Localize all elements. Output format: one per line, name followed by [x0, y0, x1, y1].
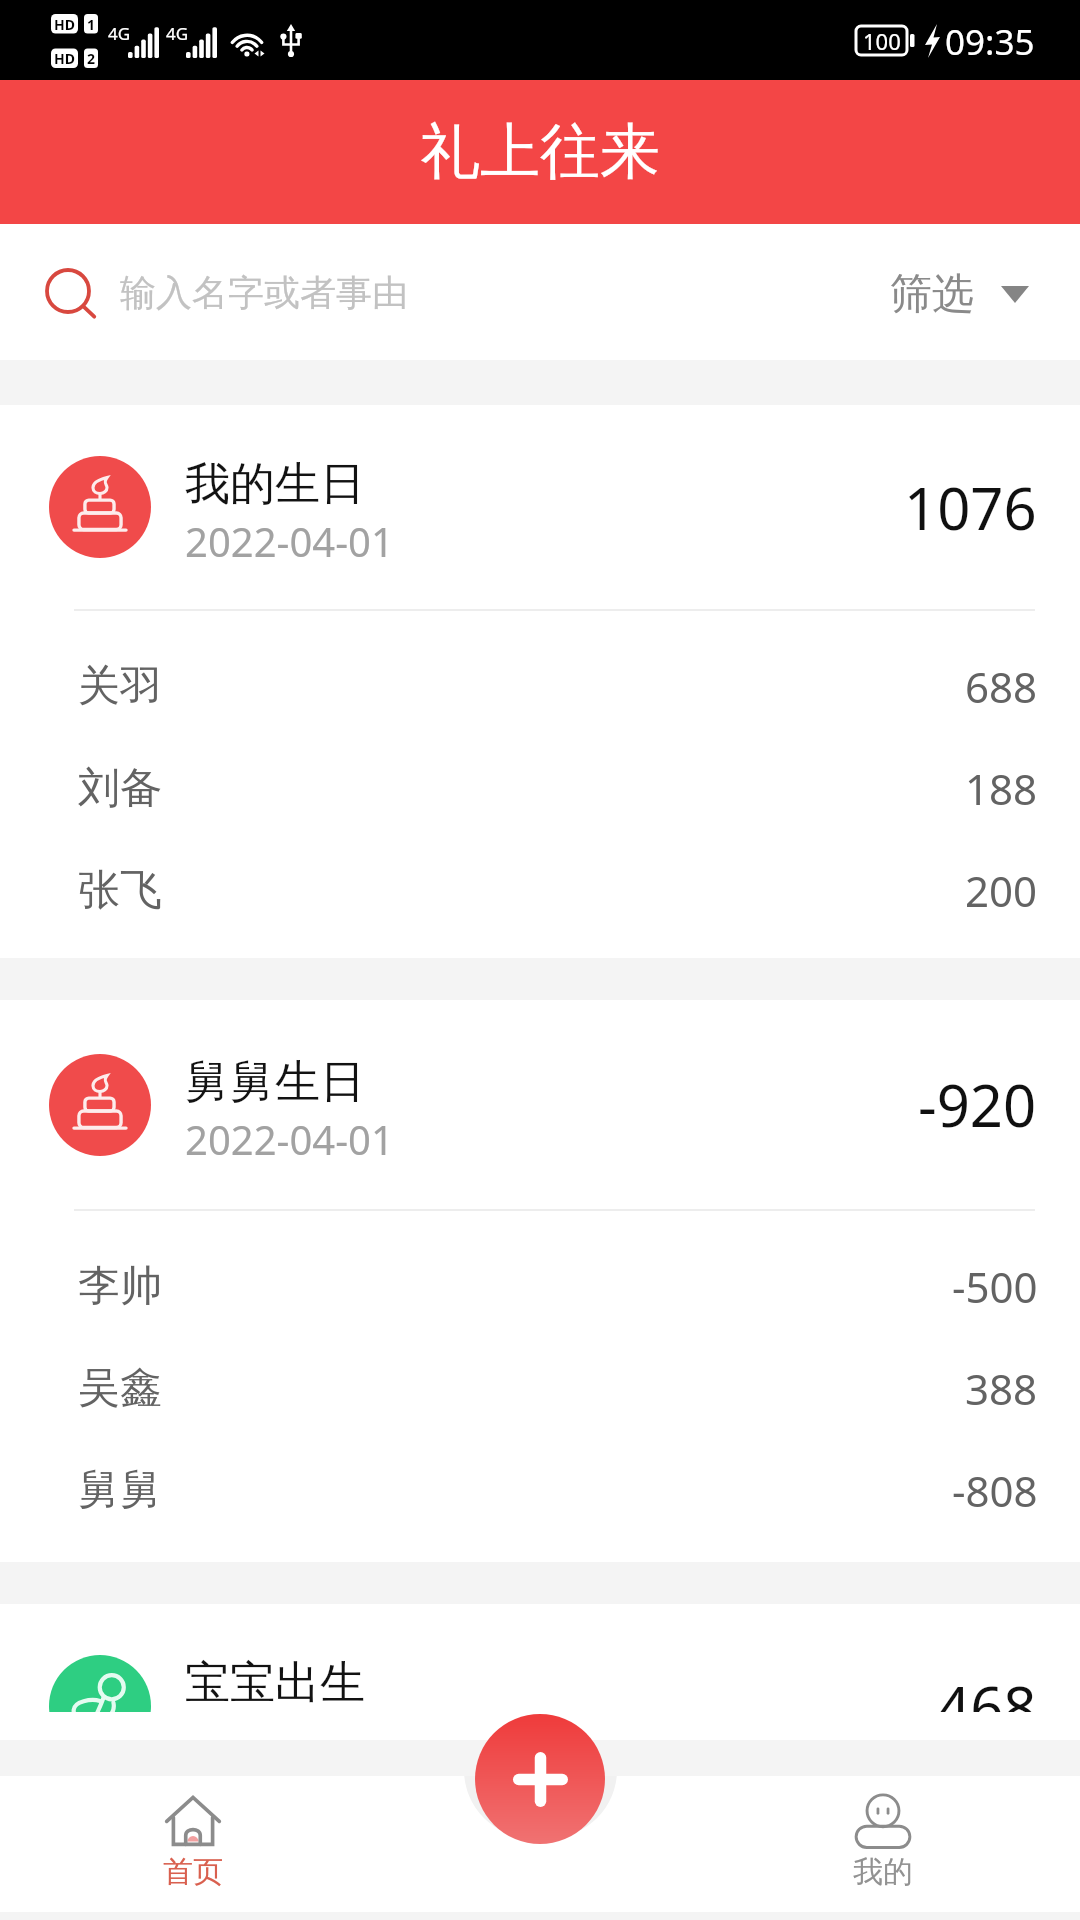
button[interactable]: 筛选: [870, 246, 1034, 339]
staticText: 舅舅: [78, 1464, 162, 1517]
button[interactable]: 舅舅生日: [0, 1000, 1080, 1209]
staticText: 关羽: [78, 660, 162, 713]
button[interactable]: 我的生日: [0, 405, 1080, 609]
staticText: 4G: [108, 22, 131, 45]
staticText: 李帅: [78, 1260, 162, 1313]
staticText: 首页: [163, 1853, 223, 1891]
staticText: 礼上往来: [420, 114, 660, 190]
button[interactable]: 刘备: [0, 737, 1080, 839]
staticText: 1076: [904, 468, 1037, 547]
staticText: 吴鑫: [78, 1362, 162, 1415]
staticText: 我的生日: [185, 456, 365, 513]
button[interactable]: 宝宝出生: [0, 1604, 1080, 1712]
button[interactable]: 吴鑫: [0, 1337, 1080, 1439]
button[interactable]: 张飞: [0, 839, 1080, 941]
staticText: 2: [87, 49, 96, 68]
staticText: 688: [965, 658, 1038, 715]
staticText: 2022-04-01: [185, 514, 394, 568]
staticText: 100: [863, 26, 901, 55]
button[interactable]: 关羽: [0, 635, 1080, 737]
button[interactable]: 我的: [830, 1794, 936, 1902]
staticText: 468: [937, 1667, 1037, 1712]
staticText: 1: [87, 15, 96, 34]
staticText: 388: [965, 1360, 1038, 1417]
staticText: 张飞: [78, 864, 162, 917]
staticText: 188: [965, 760, 1038, 817]
staticText: -500: [952, 1258, 1038, 1315]
staticText: 我的: [853, 1853, 913, 1891]
staticText: 输入名字或者事由: [120, 270, 408, 315]
staticText: 200: [965, 862, 1038, 919]
button[interactable]: 首页: [140, 1794, 246, 1902]
staticText: 09:35: [945, 18, 1035, 66]
staticText: 4G: [166, 22, 189, 45]
button[interactable]: Add record: [475, 1714, 605, 1844]
staticText: HD: [54, 15, 75, 34]
staticText: 舅舅生日: [185, 1054, 365, 1111]
staticText: -808: [952, 1462, 1038, 1519]
button[interactable]: 李帅: [0, 1235, 1080, 1337]
staticText: 筛选: [890, 268, 974, 321]
staticText: -920: [918, 1065, 1037, 1144]
staticText: 刘备: [78, 762, 162, 815]
button[interactable]: 输入名字或者事由: [44, 224, 870, 360]
staticText: HD: [54, 49, 75, 68]
staticText: 2022-04-01: [185, 1112, 394, 1166]
button[interactable]: 舅舅: [0, 1439, 1080, 1541]
staticText: 宝宝出生: [185, 1655, 365, 1712]
